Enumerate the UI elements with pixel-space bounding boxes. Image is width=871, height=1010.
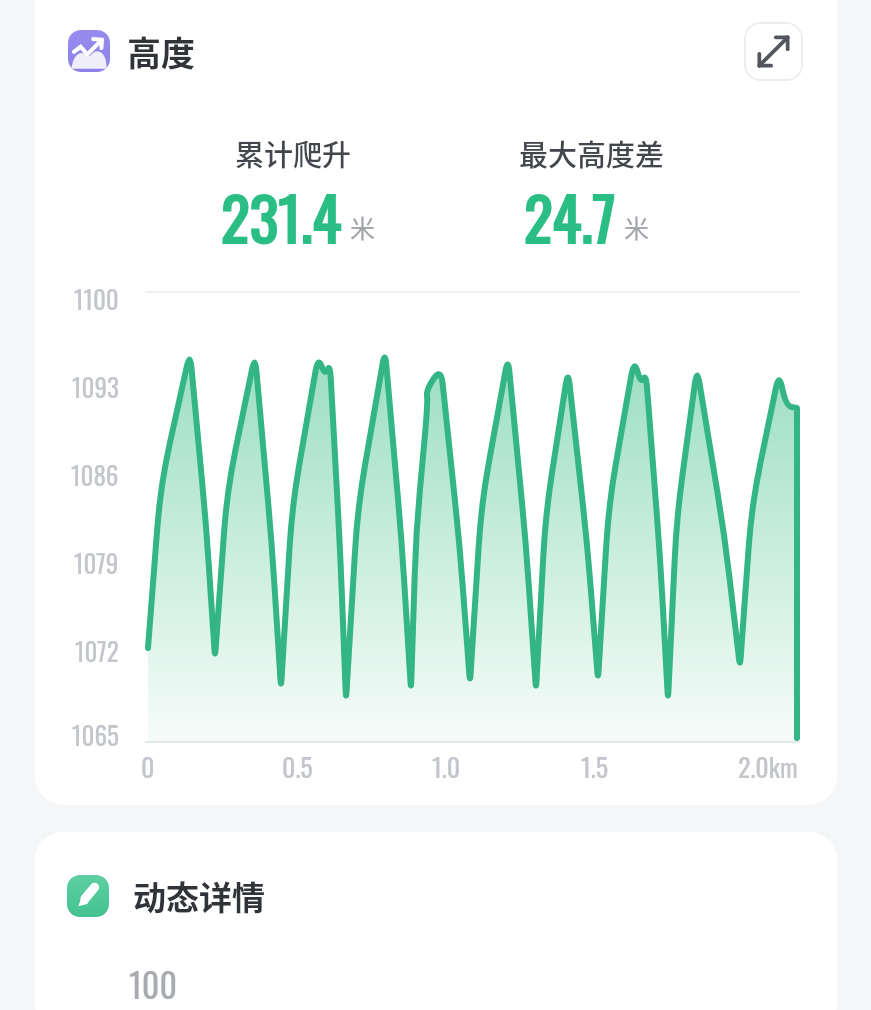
staticText: 米	[624, 209, 650, 245]
button[interactable]	[744, 22, 803, 81]
button[interactable]	[67, 875, 109, 917]
staticText: 高度	[127, 27, 195, 76]
staticText: 1072	[75, 632, 119, 669]
staticText: 米	[350, 209, 376, 245]
staticText: 1.0	[432, 747, 461, 786]
staticText: 1093	[72, 368, 119, 405]
staticText: 0	[141, 747, 155, 786]
staticText: 1100	[74, 280, 119, 317]
button[interactable]	[35, 832, 837, 1010]
staticText: 0.5	[282, 747, 313, 786]
staticText: 1.5	[581, 747, 609, 786]
staticText: 1079	[74, 544, 119, 581]
staticText: 2.0km	[738, 747, 798, 786]
staticText: 1065	[72, 716, 119, 753]
staticText: 动态详情	[133, 872, 265, 920]
staticText: 24.7	[524, 171, 616, 260]
button[interactable]	[68, 30, 110, 72]
staticText: 1086	[71, 456, 119, 493]
staticText: 累计爬升	[235, 132, 352, 174]
staticText: 最大高度差	[519, 132, 665, 174]
staticText: 100	[129, 958, 178, 1006]
staticText: 231.4	[221, 171, 342, 260]
